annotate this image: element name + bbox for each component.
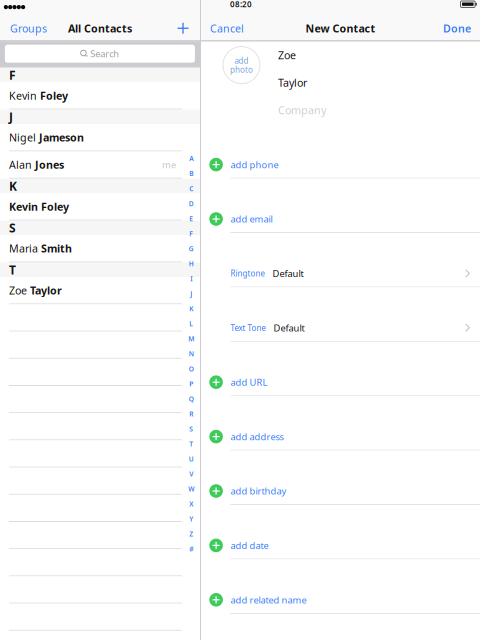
staticText: Nigel bbox=[9, 130, 39, 144]
staticText: N bbox=[189, 349, 194, 358]
button[interactable]: add phone bbox=[201, 151, 480, 179]
button[interactable]: add birthday bbox=[201, 478, 480, 505]
staticText: add birthday bbox=[230, 485, 286, 497]
button[interactable]: E bbox=[185, 211, 197, 226]
button[interactable]: M bbox=[185, 331, 197, 346]
staticText: Maria bbox=[9, 241, 41, 255]
button[interactable]: Cancel bbox=[210, 16, 244, 40]
staticText: Z bbox=[189, 530, 193, 538]
staticText: V bbox=[189, 469, 193, 478]
staticText: Jameson bbox=[39, 130, 84, 144]
button[interactable]: I bbox=[185, 271, 197, 286]
staticText: R bbox=[189, 409, 193, 418]
staticText: E bbox=[189, 214, 193, 223]
button[interactable]: Text Tone bbox=[201, 315, 480, 342]
button[interactable]: J bbox=[185, 286, 197, 301]
button[interactable]: V bbox=[185, 466, 197, 481]
staticText: W bbox=[188, 484, 194, 493]
button[interactable]: C bbox=[185, 181, 197, 196]
button[interactable]: Search bbox=[5, 45, 195, 63]
staticText: Foley bbox=[40, 88, 68, 103]
button[interactable]: O bbox=[185, 361, 197, 376]
staticText: C bbox=[189, 184, 193, 193]
staticText: M bbox=[188, 334, 194, 343]
button[interactable]: R bbox=[185, 406, 197, 421]
button[interactable]: Alan bbox=[0, 151, 200, 179]
staticText: K bbox=[9, 178, 17, 194]
button[interactable]: add email bbox=[201, 206, 480, 233]
staticText: add phone bbox=[230, 158, 278, 171]
staticText: Smith bbox=[41, 241, 72, 255]
staticText: T bbox=[189, 439, 193, 448]
button[interactable]: D bbox=[185, 196, 197, 211]
staticText: Cancel bbox=[210, 21, 244, 35]
staticText: Kevin bbox=[9, 88, 40, 103]
button[interactable]: Kevin bbox=[0, 82, 200, 110]
button[interactable]: Nigel bbox=[0, 124, 200, 151]
staticText: add date bbox=[230, 539, 268, 552]
staticText: Zoe bbox=[278, 48, 296, 62]
button[interactable]: Y bbox=[185, 511, 197, 526]
button[interactable]: T bbox=[185, 436, 197, 451]
button[interactable]: N bbox=[185, 346, 197, 361]
staticText: Text Tone bbox=[230, 322, 266, 333]
button[interactable]: L bbox=[185, 316, 197, 331]
button[interactable]: Ringtone bbox=[201, 260, 480, 287]
button[interactable]: K bbox=[185, 301, 197, 316]
staticText: add address bbox=[230, 430, 283, 443]
button[interactable]: add address bbox=[201, 423, 480, 451]
staticText: O bbox=[189, 364, 194, 373]
button[interactable]: Zoe bbox=[278, 41, 480, 69]
staticText: New Contact bbox=[305, 21, 375, 35]
staticText: S bbox=[9, 220, 16, 236]
button[interactable]: Maria bbox=[0, 235, 200, 262]
staticText: Jones bbox=[35, 157, 64, 172]
staticText: add URL bbox=[230, 376, 267, 388]
button[interactable]: W bbox=[185, 481, 197, 496]
button[interactable]: add related name bbox=[201, 587, 480, 614]
button[interactable]: Add photo bbox=[223, 47, 260, 84]
staticText: K bbox=[189, 304, 193, 313]
button[interactable]: S bbox=[185, 421, 197, 436]
button[interactable]: F bbox=[185, 226, 197, 241]
staticText: 08:20 bbox=[230, 0, 252, 9]
staticText: Taylor bbox=[30, 283, 62, 297]
staticText: add related name bbox=[230, 594, 306, 606]
button[interactable]: Groups bbox=[10, 16, 47, 40]
staticText: U bbox=[189, 454, 194, 463]
staticText: Company bbox=[278, 103, 326, 117]
staticText: add bbox=[234, 55, 248, 66]
button[interactable]: Add contact bbox=[177, 16, 188, 40]
button[interactable]: G bbox=[185, 241, 197, 256]
button[interactable]: add URL bbox=[201, 369, 480, 396]
staticText: P bbox=[189, 379, 193, 388]
button[interactable]: # bbox=[185, 541, 197, 556]
staticText: F bbox=[9, 67, 16, 83]
button[interactable]: B bbox=[185, 166, 197, 181]
staticText: Zoe bbox=[9, 283, 30, 297]
button[interactable]: H bbox=[185, 256, 197, 271]
button[interactable]: U bbox=[185, 451, 197, 466]
button[interactable]: Done bbox=[443, 16, 471, 40]
button[interactable]: Q bbox=[185, 391, 197, 406]
staticText: add email bbox=[230, 213, 272, 225]
button[interactable]: Z bbox=[185, 526, 197, 541]
staticText: me bbox=[162, 158, 176, 171]
staticText: B bbox=[189, 169, 193, 178]
staticText: Groups bbox=[10, 21, 47, 35]
staticText: J bbox=[9, 109, 13, 125]
staticText: Done bbox=[443, 21, 471, 35]
button[interactable]: P bbox=[185, 376, 197, 391]
staticText: Q bbox=[189, 394, 194, 403]
button[interactable]: Kevin Foley bbox=[0, 193, 200, 221]
button[interactable]: A bbox=[185, 151, 197, 166]
button[interactable]: Zoe bbox=[0, 277, 200, 304]
staticText: Y bbox=[189, 515, 193, 523]
button[interactable]: X bbox=[185, 496, 197, 511]
staticText: J bbox=[190, 289, 192, 298]
staticText: # bbox=[189, 545, 193, 553]
button[interactable]: add date bbox=[201, 532, 480, 559]
button[interactable]: Company bbox=[278, 96, 480, 124]
staticText: S bbox=[189, 424, 193, 433]
button[interactable]: Taylor bbox=[278, 69, 480, 96]
